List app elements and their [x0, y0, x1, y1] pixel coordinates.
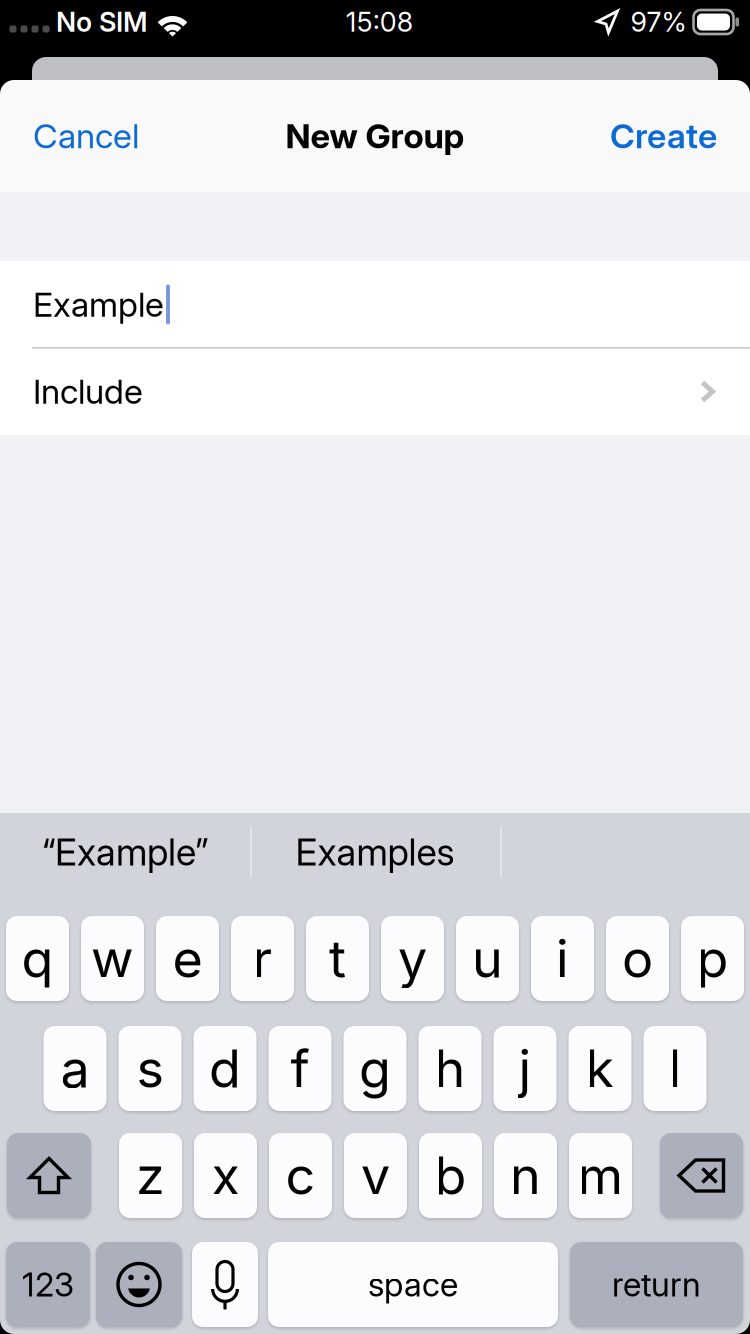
staticText: o	[622, 927, 653, 990]
staticText: s	[136, 1037, 163, 1100]
staticText: d	[209, 1037, 241, 1100]
button[interactable]: t	[306, 916, 369, 1001]
staticText: f	[290, 1037, 309, 1100]
button[interactable]: k	[568, 1026, 631, 1111]
button[interactable]: Emoji	[96, 1242, 182, 1327]
button[interactable]: m	[569, 1133, 632, 1218]
button[interactable]: n	[494, 1133, 557, 1218]
staticText: j	[518, 1037, 531, 1100]
button[interactable]: Create	[594, 90, 733, 182]
button[interactable]: Dictate	[192, 1242, 258, 1327]
button[interactable]: o	[606, 916, 669, 1001]
staticText: return	[612, 1264, 701, 1304]
staticText: l	[668, 1037, 681, 1100]
staticText: y	[398, 927, 427, 990]
staticText: 15:08	[346, 6, 413, 38]
staticText: x	[211, 1144, 239, 1207]
staticText: Cancel	[33, 115, 139, 156]
staticText: Create	[610, 115, 717, 156]
button[interactable]: d	[193, 1026, 256, 1111]
button[interactable]: i	[531, 916, 594, 1001]
staticText: g	[359, 1037, 391, 1100]
staticText: t	[329, 927, 346, 990]
button[interactable]: f	[268, 1026, 331, 1111]
button[interactable]: s	[118, 1026, 181, 1111]
button[interactable]: b	[419, 1133, 482, 1218]
button[interactable]: r	[231, 916, 294, 1001]
staticText: h	[434, 1037, 465, 1100]
button[interactable]: space	[268, 1242, 558, 1327]
staticText: “Example”	[42, 830, 208, 874]
button[interactable]: “Example”	[0, 813, 250, 891]
button[interactable]: q	[6, 916, 69, 1001]
staticText: n	[510, 1144, 541, 1207]
button[interactable]: j	[493, 1026, 556, 1111]
button[interactable]: y	[381, 916, 444, 1001]
button[interactable]: v	[344, 1133, 407, 1218]
button[interactable]: g	[343, 1026, 406, 1111]
staticText: 123	[22, 1264, 74, 1304]
staticText: a	[60, 1037, 89, 1100]
staticText: b	[434, 1144, 466, 1207]
button[interactable]: Cancel	[17, 90, 155, 182]
staticText: r	[252, 927, 272, 990]
staticText: 97%	[630, 6, 686, 38]
staticText: q	[21, 927, 53, 990]
staticText: New Group	[285, 115, 464, 156]
button[interactable]: a	[43, 1026, 106, 1111]
button[interactable]: Delete	[660, 1133, 743, 1218]
staticText: u	[472, 927, 503, 990]
button[interactable]: Include	[0, 348, 750, 435]
button[interactable]: 123	[6, 1242, 90, 1327]
button[interactable]: e	[156, 916, 219, 1001]
button[interactable]: Shift	[7, 1133, 91, 1218]
staticText: c	[285, 1144, 315, 1207]
button[interactable]: return	[570, 1242, 743, 1327]
button[interactable]: p	[681, 916, 744, 1001]
button[interactable]: w	[81, 916, 144, 1001]
button[interactable]: z	[119, 1133, 182, 1218]
staticText: p	[696, 927, 728, 990]
staticText: w	[91, 927, 134, 990]
button[interactable]: Examples	[250, 813, 500, 891]
button[interactable]: h	[418, 1026, 481, 1111]
button[interactable]: l	[643, 1026, 706, 1111]
staticText: e	[172, 927, 202, 990]
staticText: i	[556, 927, 569, 990]
button[interactable]: x	[194, 1133, 257, 1218]
staticText: No SIM	[56, 6, 148, 38]
staticText: Example	[33, 284, 164, 325]
staticText: v	[361, 1144, 390, 1207]
staticText: m	[577, 1144, 623, 1207]
staticText: Examples	[295, 830, 454, 874]
staticText: z	[136, 1144, 165, 1207]
button[interactable]: u	[456, 916, 519, 1001]
button[interactable]: c	[269, 1133, 332, 1218]
staticText: k	[585, 1037, 614, 1100]
staticText: space	[368, 1264, 458, 1304]
staticText: Include	[33, 371, 143, 412]
